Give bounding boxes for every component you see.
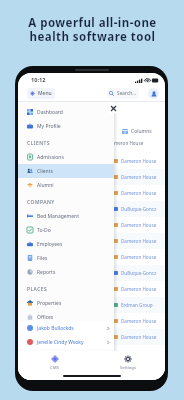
staticText: Bed Management: [37, 213, 79, 220]
staticText: My Profile: [37, 123, 61, 130]
staticText: Reports: [37, 269, 56, 276]
staticText: Files: [37, 255, 48, 262]
staticText: Jenelle Cindy Wsoky: [37, 339, 84, 346]
staticText: 10:12: [31, 76, 46, 84]
staticText: A powerful all-in-one health software to…: [28, 15, 157, 44]
button[interactable]: Jenelle Cindy Wsoky: [18, 335, 114, 349]
staticText: Settings: [120, 365, 136, 371]
staticText: Alumni: [37, 182, 54, 189]
staticText: Employees: [37, 241, 63, 248]
staticText: Menu: [38, 90, 52, 97]
button[interactable]: Admissions: [18, 150, 114, 164]
staticText: Dameron House: [121, 254, 157, 260]
staticText: Columns: [131, 128, 152, 135]
button[interactable]: My Profile: [18, 119, 114, 133]
staticText: Dameron House: [121, 238, 157, 244]
staticText: Clients: [37, 168, 53, 175]
button[interactable]: CMS: [18, 351, 91, 380]
staticText: Dameron House: [121, 158, 157, 164]
staticText: Dameron House: [121, 334, 157, 340]
button[interactable]: Search...: [107, 88, 139, 99]
button[interactable]: Dameron House: [18, 329, 165, 345]
button[interactable]: DuBuque-Goncz: [18, 265, 165, 281]
staticText: Dashboard: [37, 109, 63, 116]
button[interactable]: To-Do: [18, 223, 114, 237]
button[interactable]: Settings: [91, 351, 165, 380]
button[interactable]: Dameron House: [18, 313, 165, 329]
button[interactable]: Profile: [148, 88, 159, 99]
staticText: CLIENTS: [27, 140, 50, 147]
button[interactable]: Dameron House: [18, 217, 165, 233]
button[interactable]: Dashboard: [18, 105, 114, 119]
staticText: Dameron House: [121, 174, 157, 180]
button[interactable]: Dameron House: [18, 185, 165, 201]
button[interactable]: Properties: [18, 296, 114, 310]
staticText: Dameron House: [121, 286, 157, 292]
staticText: Admissions: [37, 154, 64, 161]
staticText: DuBuque-Goncz: [121, 206, 157, 212]
button[interactable]: DuBuque-Goncz: [18, 201, 165, 217]
button[interactable]: Jakob Bullockds: [18, 321, 114, 335]
button[interactable]: Files: [18, 251, 114, 265]
staticText: Dameron House: [121, 190, 157, 196]
staticText: PLACES: [27, 286, 48, 293]
staticText: Search...: [117, 90, 137, 97]
button[interactable]: Close menu: [107, 102, 119, 114]
staticText: COMPANY: [27, 199, 55, 206]
staticText: Jakob Bullockds: [37, 325, 74, 332]
button[interactable]: Clients: [18, 164, 114, 178]
button[interactable]: Alumni: [18, 178, 114, 192]
button[interactable]: Bed Management: [18, 209, 114, 223]
staticText: CMS: [50, 365, 59, 371]
button[interactable]: Reports: [18, 265, 114, 279]
button[interactable]: Dameron House: [18, 249, 165, 265]
button[interactable]: Dameron House: [18, 169, 165, 185]
staticText: Dameron House: [121, 318, 157, 324]
staticText: DuBuque-Goncz: [121, 270, 157, 276]
staticText: Offices: [37, 314, 54, 321]
button[interactable]: Dameron House: [18, 281, 165, 297]
button[interactable]: Dameron House: [18, 153, 165, 169]
staticText: To-Do: [37, 227, 51, 234]
button[interactable]: Employees: [18, 237, 114, 251]
button[interactable]: Erdman Group: [18, 297, 165, 313]
button[interactable]: Dameron House: [18, 233, 165, 249]
button[interactable]: Offices: [18, 310, 114, 324]
staticText: Properties: [37, 300, 62, 307]
staticText: Dameron House: [108, 140, 144, 146]
staticText: Erdman Group: [121, 302, 153, 308]
button[interactable]: Menu: [27, 88, 55, 99]
staticText: Dameron House: [121, 222, 157, 228]
